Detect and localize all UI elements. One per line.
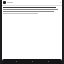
button[interactable]: Menu [3,1,6,4]
button[interactable]: Search [30,59,34,64]
button[interactable]: Home [14,59,18,64]
button[interactable]: Profile [46,59,50,64]
